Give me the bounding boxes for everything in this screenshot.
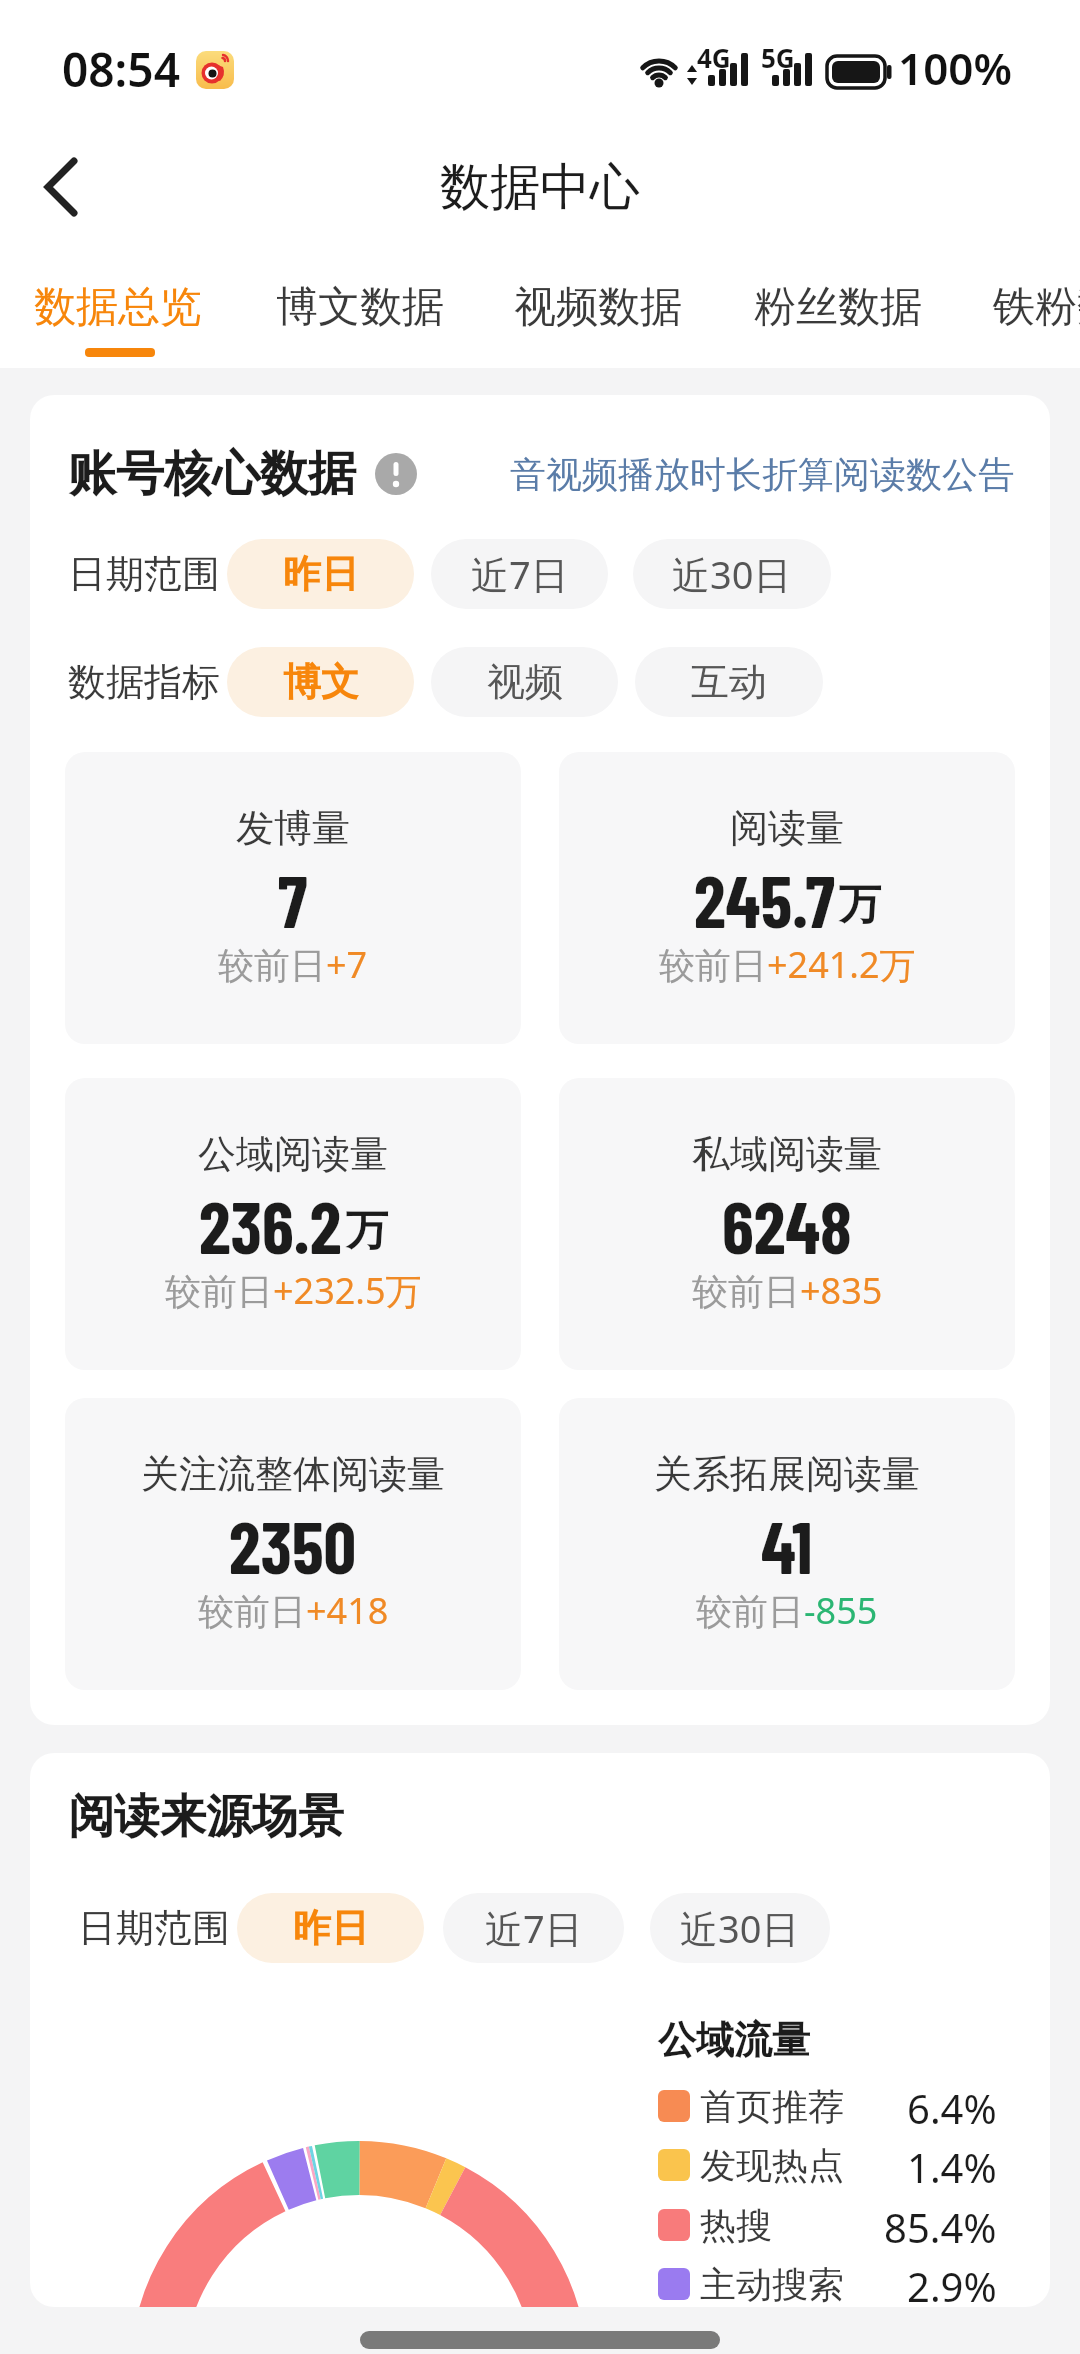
staticText: 昨日 <box>293 1904 369 1952</box>
staticText: 发博量 <box>236 804 350 852</box>
button[interactable]: 视频数据 <box>508 267 688 347</box>
staticText: 私域阅读量 <box>692 1130 882 1178</box>
staticText: 1.4% <box>907 2140 997 2190</box>
staticText: 主动搜索 <box>700 2262 844 2307</box>
staticText: 近7日 <box>471 548 569 600</box>
staticText: 100% <box>898 38 1013 98</box>
button[interactable]: 铁粉数据 <box>993 267 1080 347</box>
staticText: 85.4% <box>884 2200 997 2250</box>
staticText: 较前日+232.5万 <box>165 1266 422 1315</box>
staticText: 日期范围 <box>78 1904 230 1952</box>
staticText: 245.7 <box>694 856 835 940</box>
button[interactable]: 近30日 <box>650 1893 830 1963</box>
button[interactable]: 数据总览 <box>28 267 208 347</box>
staticText: 视频数据 <box>514 281 682 334</box>
button[interactable]: 近7日 <box>443 1893 624 1963</box>
staticText: 热搜 <box>700 2203 772 2248</box>
button[interactable]: 音视频播放时长折算阅读数公告 <box>500 444 1014 504</box>
staticText: 音视频播放时长折算阅读数公告 <box>510 452 1014 497</box>
staticText: 6.4% <box>907 2081 997 2131</box>
staticText: 账号核心数据 <box>68 444 356 504</box>
staticText: 08:54 <box>62 38 180 98</box>
staticText: 发现热点 <box>700 2143 844 2188</box>
staticText: 较前日+7 <box>218 940 368 989</box>
staticText: 2350 <box>229 1502 357 1586</box>
staticText: 较前日-855 <box>696 1586 878 1635</box>
staticText: 铁粉数据 <box>993 281 1080 334</box>
staticText: 236.2 <box>199 1182 342 1266</box>
button[interactable]: 互动 <box>635 647 823 717</box>
button[interactable]: 博文 <box>227 647 414 717</box>
staticText: 数据指标 <box>68 658 220 706</box>
staticText: 万 <box>839 879 881 932</box>
staticText: 关系拓展阅读量 <box>654 1450 920 1498</box>
staticText: 近7日 <box>485 1902 583 1954</box>
staticText: 博文数据 <box>276 281 444 334</box>
staticText: 粉丝数据 <box>754 281 922 334</box>
staticText: 数据总览 <box>34 281 202 334</box>
staticText: 日期范围 <box>68 550 220 598</box>
staticText: 视频 <box>487 658 563 706</box>
staticText: 昨日 <box>283 550 359 598</box>
staticText: 首页推荐 <box>700 2084 844 2129</box>
staticText: 4G <box>697 40 731 70</box>
staticText: 较前日+241.2万 <box>659 940 916 989</box>
staticText: 阅读来源场景 <box>68 1788 344 1846</box>
staticText: 5G <box>761 40 795 70</box>
staticText: 公域阅读量 <box>198 1130 388 1178</box>
button[interactable]: 博文数据 <box>270 267 450 347</box>
staticText: 较前日+418 <box>198 1586 389 1635</box>
staticText: 数据中心 <box>440 156 640 219</box>
staticText: 2.9% <box>907 2259 997 2307</box>
button[interactable]: 视频 <box>431 647 618 717</box>
staticText: 公域流量 <box>658 2016 810 2064</box>
staticText: 41 <box>761 1502 813 1586</box>
button[interactable]: 昨日 <box>237 1893 424 1963</box>
staticText: 关注流整体阅读量 <box>141 1450 445 1498</box>
staticText: 阅读量 <box>730 804 844 852</box>
button[interactable]: 昨日 <box>227 539 414 609</box>
staticText: 博文 <box>283 658 359 706</box>
staticText: 互动 <box>691 658 767 706</box>
button[interactable]: 粉丝数据 <box>748 267 928 347</box>
staticText: 万 <box>346 1205 388 1258</box>
button[interactable] <box>30 155 94 219</box>
staticText: 近30日 <box>680 1902 800 1954</box>
button[interactable]: 近7日 <box>431 539 608 609</box>
staticText: 较前日+835 <box>692 1266 883 1315</box>
staticText: 6248 <box>722 1182 852 1266</box>
staticText: 7 <box>278 856 308 940</box>
staticText: 近30日 <box>672 548 792 600</box>
button[interactable]: 近30日 <box>633 539 831 609</box>
